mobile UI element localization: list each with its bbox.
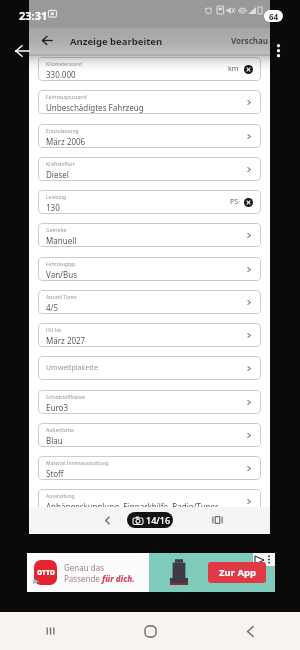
button[interactable]: Zur App [208,562,266,583]
staticText: März 2006 [46,136,86,147]
button[interactable]: Recent apps [0,612,100,650]
button[interactable]: Leistung [38,190,261,214]
button[interactable]: Anzahl Türen [38,290,261,314]
staticText: Kraftstoffart [46,161,75,168]
staticText: Anhängerkupplung, Einparkhilfe, Radio/Tu… [46,501,220,512]
button[interactable]: Back [13,42,31,60]
staticText: OTTO [37,568,55,577]
button[interactable]: Previous photo [98,507,116,533]
staticText: Fahrzeugzustand [46,94,87,101]
staticText: Kilometerstand [46,61,83,68]
staticText: 14/16 [146,514,171,526]
staticText: Getriebe [46,227,67,234]
staticText: Stoff [46,468,64,479]
button[interactable]: Außenfarbe [38,423,261,447]
staticText: Material Innenausstattung [46,460,109,467]
button[interactable]: Kilometerstand [38,57,261,81]
staticText: 4/5 [46,302,59,313]
staticText: HU bis [46,327,62,334]
button[interactable]: Navigate up [35,29,58,52]
staticText: Leistung [46,194,67,201]
button[interactable]: HU bis [38,323,261,347]
staticText: Diesel [46,169,69,180]
staticText: 64 [269,11,279,22]
staticText: Vorschau [231,35,268,46]
button[interactable]: Ausstattung [38,489,261,513]
button[interactable]: Clear [244,198,253,207]
staticText: März 2027 [46,335,86,346]
staticText: Passende für dich. [64,573,135,584]
button[interactable]: Vorschau [228,28,270,53]
staticText: Ausstattung [46,493,75,500]
button[interactable]: Home [100,612,200,650]
button[interactable]: Umweltplakette [38,356,261,380]
staticText: Anzahl Türen [46,294,77,301]
staticText: PS [230,197,239,207]
staticText: Euro3 [46,402,68,413]
button[interactable]: OTTO [27,553,275,592]
button[interactable]: Getriebe [38,223,261,247]
staticText: Blau [46,435,63,446]
staticText: 23:31 [19,8,48,23]
button[interactable]: Fahrzeugzustand [38,90,261,114]
button[interactable]: Gallery [208,507,226,533]
staticText: 330.000 [46,69,76,80]
button[interactable]: Schadstoffklasse [38,390,261,414]
staticText: Erstzulassung [46,128,79,135]
staticText: km [228,64,239,74]
button[interactable]: More options [272,40,285,61]
button[interactable]: Kraftstoffart [38,157,261,181]
staticText: Außenfarbe [46,427,74,434]
staticText: Anzeige bearbeiten [70,35,163,48]
button[interactable]: Erstzulassung [38,124,261,148]
staticText: Van/Bus [46,269,78,280]
button[interactable]: Clear [244,65,253,74]
button[interactable]: Fahrzeugtyp [38,257,261,281]
button[interactable]: Back [200,612,300,650]
staticText: Umweltplakette [46,363,99,373]
staticText: 130 [46,202,60,213]
staticText: Genau das [64,562,105,573]
staticText: Manuell [46,235,77,246]
staticText: Schadstoffklasse [46,394,86,401]
staticText: Zur App [219,566,256,579]
staticText: Unbeschädigtes Fahrzeug [46,102,144,113]
button[interactable]: Material Innenausstattung [38,456,261,480]
staticText: Fahrzeugtyp [46,261,76,268]
button[interactable]: 14/16 [127,512,173,528]
